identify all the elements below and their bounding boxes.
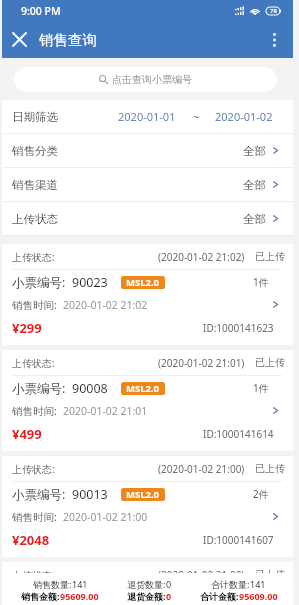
- staticText: MSL2.0: [126, 382, 160, 395]
- staticText: 2020-01-02 21:01: [63, 404, 148, 418]
- staticText: 95609.00: [60, 590, 99, 602]
- button[interactable]: 销售渠道: [2, 168, 293, 201]
- staticText: 合计数量:: [211, 578, 250, 590]
- staticText: MSL2.0: [126, 488, 160, 501]
- staticText: (2020-01-02 21:02): [158, 250, 245, 264]
- staticText: ID:1000141623: [203, 321, 274, 335]
- button[interactable]: 上传状态:: [2, 350, 293, 451]
- staticText: 141: [250, 578, 266, 590]
- staticText: (2020-01-02 21:00): [158, 568, 245, 582]
- staticText: (2020-01-02 21:00): [158, 462, 245, 476]
- staticText: 已上传: [255, 356, 285, 369]
- staticText: 0: [166, 590, 172, 602]
- staticText: 退货金额:: [127, 590, 166, 602]
- staticText: 销售时间:: [12, 404, 57, 418]
- staticText: ID:1000141607: [203, 533, 274, 547]
- staticText: 90013: [72, 486, 108, 503]
- button[interactable]: 上传状态:: [2, 456, 293, 557]
- staticText: ID:1000141614: [203, 427, 274, 441]
- staticText: 全部: [243, 178, 266, 192]
- staticText: ¥2048: [12, 531, 50, 549]
- staticText: (2020-01-02 21:01): [158, 356, 245, 370]
- staticText: 上传状态:: [12, 462, 55, 476]
- staticText: 全部: [243, 212, 266, 226]
- staticText: 1件: [253, 275, 269, 289]
- staticText: 1件: [253, 381, 269, 395]
- staticText: 小票编号:: [12, 380, 66, 397]
- button[interactable]: 日期筛选: [2, 100, 293, 133]
- staticText: 已上传: [255, 250, 285, 263]
- staticText: 2020-01-02 21:00: [63, 510, 148, 524]
- staticText: 上传状态:: [12, 568, 55, 582]
- staticText: 95609.00: [239, 590, 278, 602]
- staticText: 上传状态: [12, 212, 58, 226]
- staticText: 退货数量:: [127, 578, 166, 590]
- staticText: 销售查询: [39, 31, 97, 49]
- staticText: 小票编号:: [12, 486, 66, 503]
- staticText: ~: [193, 109, 200, 124]
- staticText: 全部: [243, 144, 266, 158]
- button[interactable]: 上传状态: [2, 202, 293, 235]
- staticText: 2020-01-02 21:02: [63, 298, 148, 312]
- staticText: 点击查询小票编号: [112, 73, 192, 86]
- staticText: 2020-01-02: [215, 109, 273, 124]
- staticText: 销售数量:: [33, 578, 72, 590]
- staticText: 销售分类: [12, 144, 58, 158]
- staticText: MSL2.0: [126, 276, 160, 289]
- staticText: 销售渠道: [12, 178, 58, 192]
- staticText: 小票编号:: [12, 274, 66, 291]
- button[interactable]: 销售分类: [2, 134, 293, 167]
- staticText: 上传状态:: [12, 250, 55, 264]
- staticText: 销售金额:: [21, 590, 60, 602]
- button[interactable]: Close: [6, 26, 33, 53]
- staticText: 日期筛选: [12, 110, 58, 124]
- staticText: 销售时间:: [12, 510, 57, 524]
- staticText: 已上传: [255, 462, 285, 475]
- staticText: 9:00 PM: [21, 4, 61, 18]
- staticText: ¥499: [12, 425, 42, 443]
- staticText: 合计金额:: [200, 590, 239, 602]
- staticText: 90023: [72, 274, 108, 291]
- button[interactable]: 点击查询小票编号: [14, 67, 277, 92]
- staticText: 上传状态:: [12, 356, 55, 370]
- staticText: 销售时间:: [12, 298, 57, 312]
- staticText: 2020-01-01: [118, 109, 176, 124]
- staticText: 78: [270, 7, 277, 15]
- button[interactable]: 上传状态:: [2, 244, 293, 345]
- staticText: 2件: [253, 487, 269, 501]
- staticText: 90008: [72, 380, 108, 397]
- staticText: 0: [166, 578, 172, 590]
- staticText: ¥299: [12, 319, 42, 337]
- button[interactable]: More options: [261, 27, 287, 53]
- staticText: 已上传: [255, 568, 285, 581]
- staticText: 141: [72, 578, 88, 590]
